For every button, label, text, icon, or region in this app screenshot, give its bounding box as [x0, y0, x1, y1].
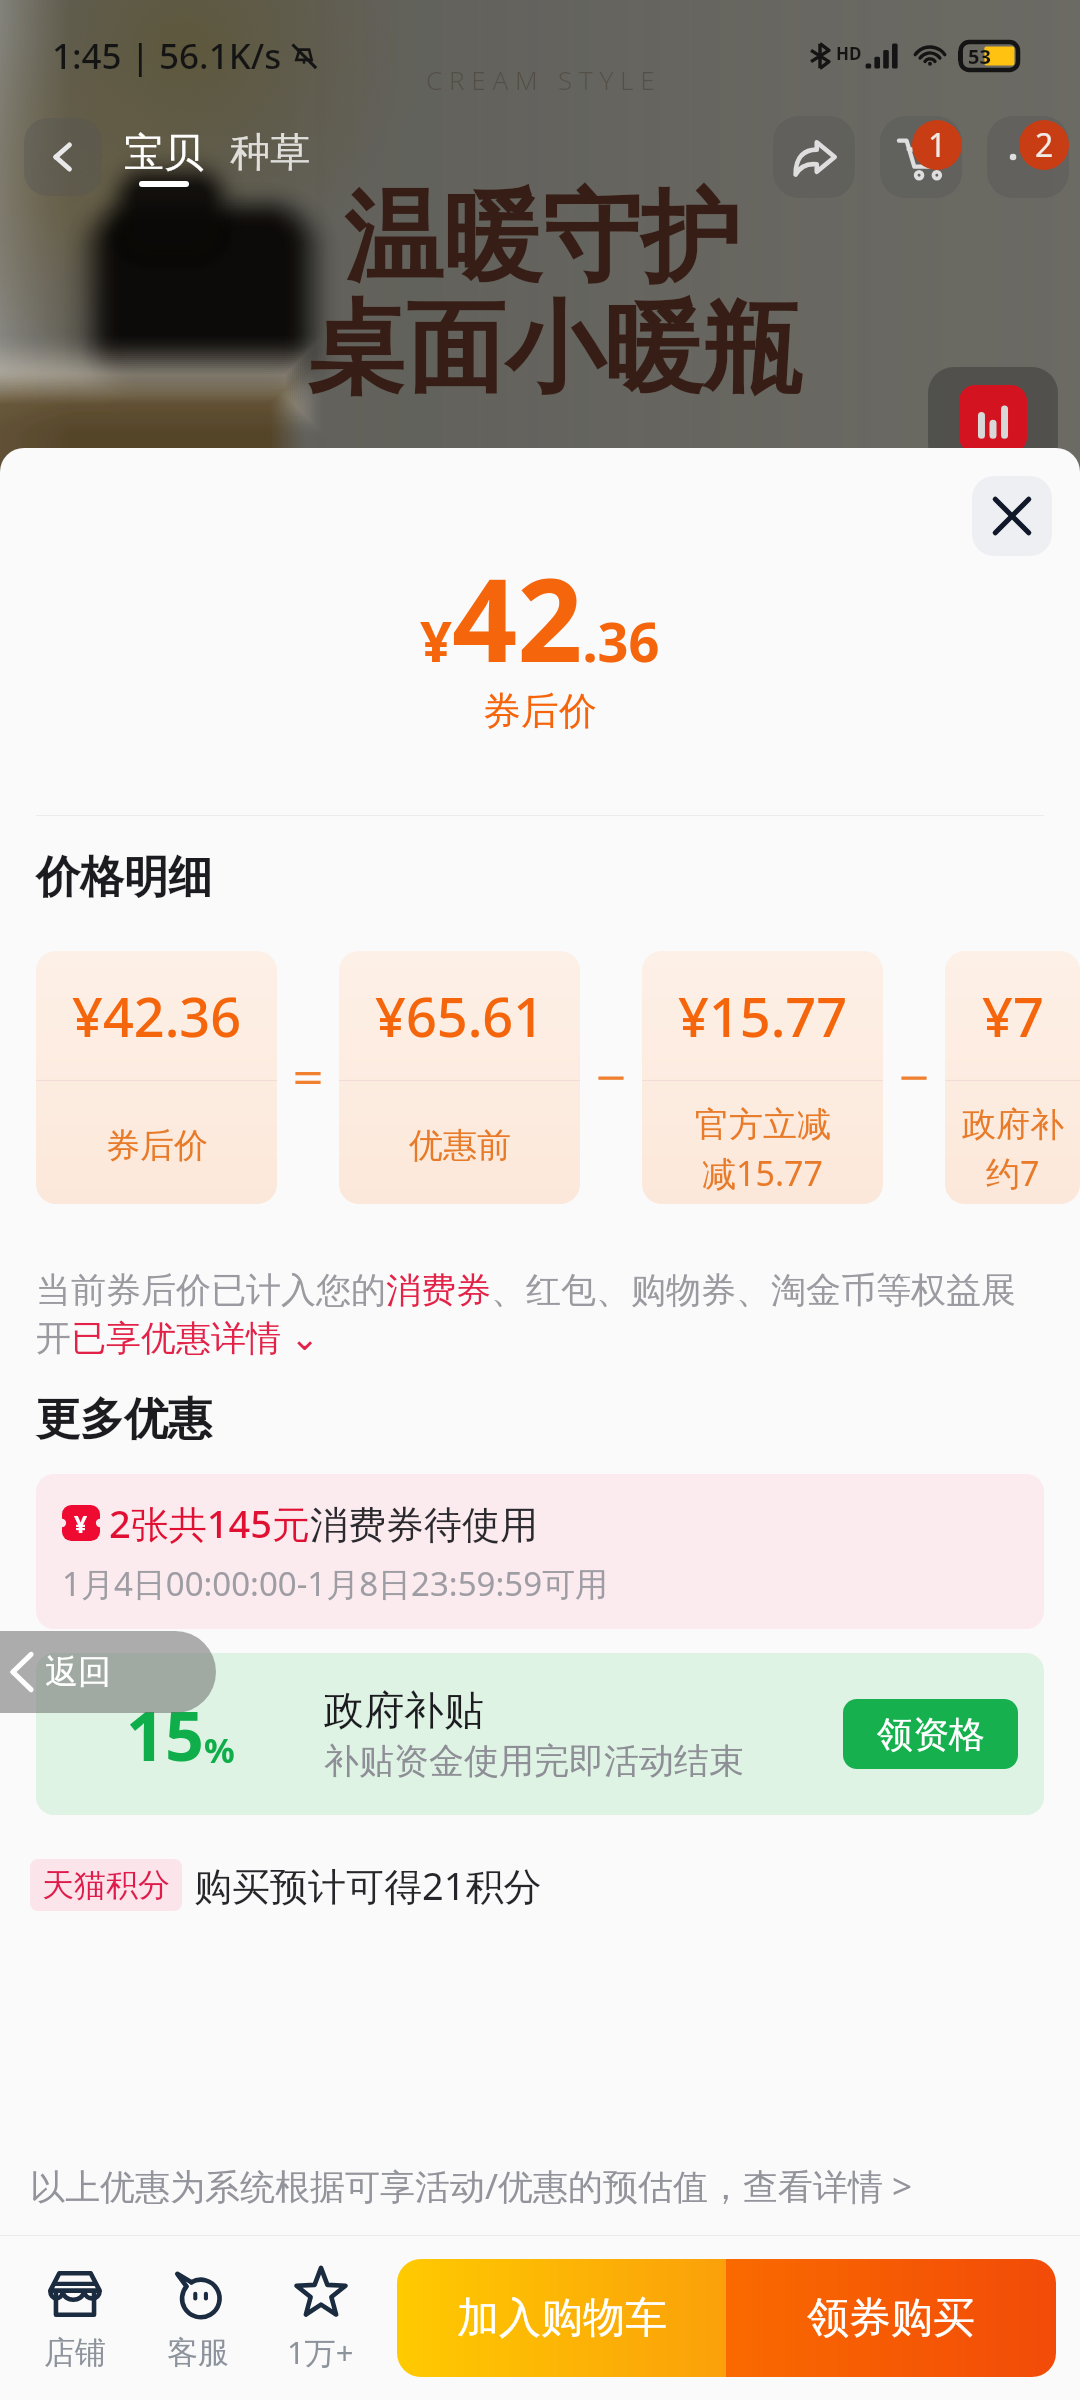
staticText: 减15.77 — [702, 1150, 823, 1196]
staticText: 优惠前 — [409, 1124, 511, 1167]
staticText: % — [204, 1727, 235, 1773]
staticText: 购买预计可得21积分 — [194, 1859, 542, 1911]
staticText: 客服 — [167, 2333, 229, 2372]
staticText: 店铺 — [44, 2333, 106, 2372]
button[interactable]: 以上优惠为系统根据可享活动/优惠的预估值，查看详情 > — [30, 2162, 1080, 2210]
staticText: 2张共145元消费券待使用 — [109, 1497, 538, 1549]
button[interactable]: 天猫积分 — [30, 1859, 542, 1911]
staticText: 政府补 — [962, 1103, 1064, 1146]
staticText: 以上优惠为系统根据可享活动/优惠的预估值，查看详情 > — [30, 2162, 913, 2210]
button[interactable]: Share — [773, 116, 855, 198]
button[interactable]: More options — [987, 116, 1069, 198]
button[interactable]: Close — [972, 476, 1052, 556]
staticText: 加入购物车 — [457, 2292, 667, 2345]
staticText: 返回 — [45, 1651, 111, 1693]
staticText: ¥42.36 — [420, 540, 660, 695]
staticText: 领资格 — [877, 1712, 985, 1757]
button[interactable]: 返回 — [0, 1631, 216, 1713]
staticText: C R E A M S T Y L E — [426, 62, 655, 97]
button[interactable]: Shop — [13, 2265, 136, 2372]
staticText: 宝贝 — [124, 127, 204, 177]
staticText: 补贴资金使用完即活动结束 — [324, 1739, 744, 1783]
staticText: ¥7 — [982, 979, 1044, 1053]
button[interactable]: ¥65.61 — [339, 951, 580, 1204]
button[interactable]: Price trend chart — [928, 367, 1058, 470]
button[interactable]: Back — [24, 118, 102, 196]
staticText: 领券购买 — [807, 2292, 975, 2345]
staticText: 1万+ — [287, 2331, 354, 2373]
staticText: 约7 — [986, 1150, 1040, 1196]
staticText: 1月4日00:00:00-1月8日23:59:59可用 — [62, 1561, 609, 1606]
staticText: 券后价 — [483, 687, 597, 735]
staticText: 1:45 | 56.1K/s — [52, 32, 282, 80]
staticText: 天猫积分 — [42, 1865, 170, 1905]
button[interactable]: 宝贝 — [124, 127, 204, 187]
staticText: 1 — [928, 123, 947, 167]
staticText: 温暖守护 — [344, 176, 740, 301]
button[interactable]: 加入购物车 — [397, 2259, 726, 2377]
staticText: 更多优惠 — [36, 1392, 212, 1447]
button[interactable]: 当前券后价已计入您的消费券、红包、购物券、淘金币等权益展开已享优惠详情 ⌄ — [36, 1268, 1044, 1360]
button[interactable]: Customer service — [136, 2265, 259, 2372]
staticText: 2 — [1035, 123, 1054, 167]
staticText: ¥15.77 — [678, 979, 848, 1053]
staticText: HD — [836, 42, 862, 65]
button[interactable]: Favourite — [259, 2263, 382, 2373]
button[interactable]: 领券购买 — [726, 2259, 1056, 2377]
button[interactable]: ¥42.36 — [36, 951, 277, 1204]
staticText: ¥ — [74, 1508, 88, 1539]
staticText: 桌面小暖瓶 — [307, 287, 802, 412]
staticText: 53 — [968, 43, 991, 70]
button[interactable]: ¥7 — [945, 951, 1080, 1204]
button[interactable]: ¥15.77 — [642, 951, 883, 1204]
button[interactable]: ¥ — [36, 1474, 1044, 1629]
button[interactable]: 领资格 — [843, 1699, 1018, 1769]
staticText: 政府补贴 — [324, 1685, 484, 1735]
staticText: ¥65.61 — [375, 979, 545, 1053]
button[interactable]: 15 — [36, 1653, 1044, 1815]
staticText: 券后价 — [106, 1124, 208, 1167]
button[interactable]: Shopping cart — [880, 116, 962, 198]
staticText: 价格明细 — [36, 850, 212, 905]
staticText: 15 — [126, 1688, 204, 1781]
button[interactable]: 种草 — [230, 127, 310, 187]
staticText: 种草 — [230, 127, 310, 177]
staticText: ¥42.36 — [72, 979, 242, 1053]
staticText: 官方立减 — [695, 1103, 831, 1146]
